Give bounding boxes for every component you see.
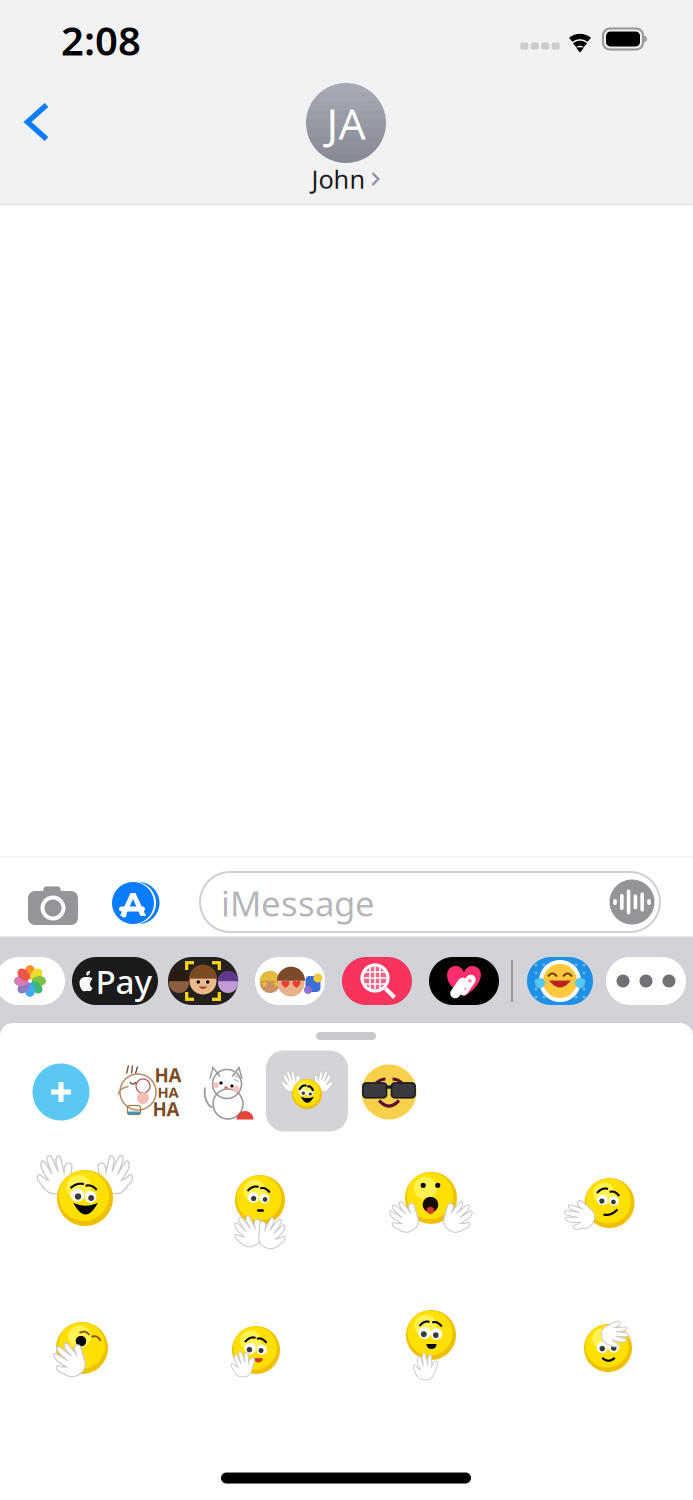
staticText: iMessage (221, 880, 375, 926)
staticText: ★ (272, 979, 280, 989)
staticText: HA (152, 1097, 179, 1121)
staticText: ★ (260, 979, 268, 989)
button[interactable]: Images (342, 957, 412, 1005)
button[interactable]: More apps (606, 957, 686, 1005)
staticText: John (311, 162, 365, 196)
staticText: 2:08 (61, 13, 141, 66)
button[interactable]: App Store (106, 874, 168, 932)
button[interactable]: Stickers (527, 957, 593, 1005)
button[interactable]: Camera (20, 877, 86, 933)
staticText: HA (157, 1082, 178, 1102)
staticText: JA (326, 95, 365, 151)
button[interactable]: Add sticker pack (24, 1055, 98, 1129)
button[interactable]: Apple Pay (72, 957, 158, 1005)
button[interactable]: Laughing dog sticker pack (107, 1055, 185, 1129)
button[interactable]: Shushing smiley sticker (221, 1316, 291, 1384)
button[interactable]: Waving smiley sticker (35, 1153, 135, 1243)
staticText: HA (154, 1063, 181, 1087)
button[interactable]: Laughing smiley sticker (40, 1312, 124, 1384)
button[interactable]: JA (306, 83, 386, 189)
button[interactable]: Shouting smiley sticker (384, 1162, 478, 1240)
button[interactable]: Record audio message (605, 875, 658, 928)
button[interactable]: Saluting smiley sticker (574, 1318, 642, 1378)
button[interactable]: Memoji (168, 957, 238, 1005)
button[interactable]: Smiley sticker pack, selected (266, 1050, 348, 1131)
button[interactable]: Cat sticker pack (191, 1055, 265, 1129)
button[interactable]: Back (5, 88, 68, 156)
button[interactable]: Pondering smiley sticker (393, 1299, 468, 1389)
button[interactable]: Thinking smiley sticker (220, 1159, 300, 1254)
button[interactable]: Photos (0, 957, 65, 1005)
button[interactable]: Pointing smiley sticker (563, 1168, 643, 1238)
button[interactable]: Memoji stickers (255, 957, 325, 1005)
button[interactable]: Fitness (429, 957, 499, 1005)
button[interactable]: Sunglasses sticker pack (352, 1055, 426, 1129)
staticText: Pay (95, 959, 152, 1003)
